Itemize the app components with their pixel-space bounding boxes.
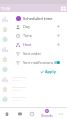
button[interactable]: Records <box>38 108 55 119</box>
staticText: Day <box>23 24 30 29</box>
button[interactable] <box>0 84 67 94</box>
button[interactable] <box>0 44 67 54</box>
staticText: Sort order <box>23 51 42 56</box>
staticText: Scheduled time <box>23 16 53 21</box>
staticText: Time <box>23 33 32 38</box>
button[interactable] <box>0 74 67 84</box>
button[interactable] <box>0 104 67 114</box>
button[interactable]: Host <box>11 40 62 49</box>
button[interactable]: Apply <box>38 68 58 75</box>
button[interactable]: Day <box>11 22 62 31</box>
staticText: Host <box>23 42 32 47</box>
staticText: Apply <box>45 69 56 74</box>
button[interactable] <box>0 94 67 104</box>
button[interactable]: Home <box>0 108 13 119</box>
button[interactable] <box>0 34 67 44</box>
button[interactable]: More <box>55 108 67 119</box>
button[interactable]: Sort order <box>11 49 62 58</box>
button[interactable] <box>0 64 67 74</box>
button[interactable] <box>0 114 67 119</box>
button[interactable]: Chats <box>13 108 26 119</box>
staticText: 11:54 <box>1 6 10 11</box>
button[interactable] <box>0 14 67 24</box>
button[interactable]: Calendar <box>60 5 66 11</box>
button[interactable]: Sort notifications <box>11 58 62 67</box>
button[interactable]: Calls <box>26 108 38 119</box>
button[interactable] <box>0 54 67 64</box>
button[interactable] <box>0 24 67 34</box>
button[interactable]: Time <box>11 31 62 40</box>
staticText: Sort notifications <box>23 60 54 65</box>
staticText: Records <box>41 114 53 118</box>
